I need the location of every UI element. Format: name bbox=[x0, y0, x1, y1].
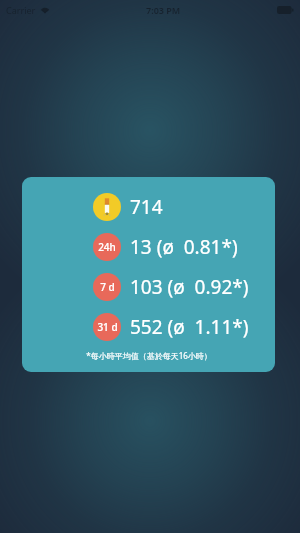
button[interactable]: Total cigarettes bbox=[22, 193, 275, 221]
staticText: *每小時平均值（基於每天16小時） bbox=[86, 350, 212, 361]
staticText: 31 d bbox=[97, 320, 118, 334]
button[interactable]: Last 31 days bbox=[22, 313, 275, 341]
staticText: 24h bbox=[98, 240, 116, 254]
other: Last 24 hours bbox=[93, 233, 121, 261]
staticText: Carrier bbox=[6, 4, 36, 16]
button[interactable]: Last 24 hours bbox=[22, 233, 275, 261]
staticText: 7 d bbox=[100, 280, 115, 294]
staticText: 103 (ø 0.92*) bbox=[130, 274, 249, 300]
button[interactable]: Last 7 days bbox=[22, 273, 275, 301]
other: Last 7 days bbox=[93, 273, 121, 301]
staticText: 7:03 PM bbox=[146, 4, 181, 16]
other: Total cigarettes bbox=[93, 193, 121, 221]
staticText: 552 (ø 1.11*) bbox=[130, 314, 249, 340]
staticText: 714 bbox=[130, 194, 163, 220]
staticText: 13 (ø 0.81*) bbox=[130, 234, 238, 260]
button[interactable]: Total cigarettes bbox=[22, 177, 275, 372]
other: Last 31 days bbox=[93, 313, 121, 341]
